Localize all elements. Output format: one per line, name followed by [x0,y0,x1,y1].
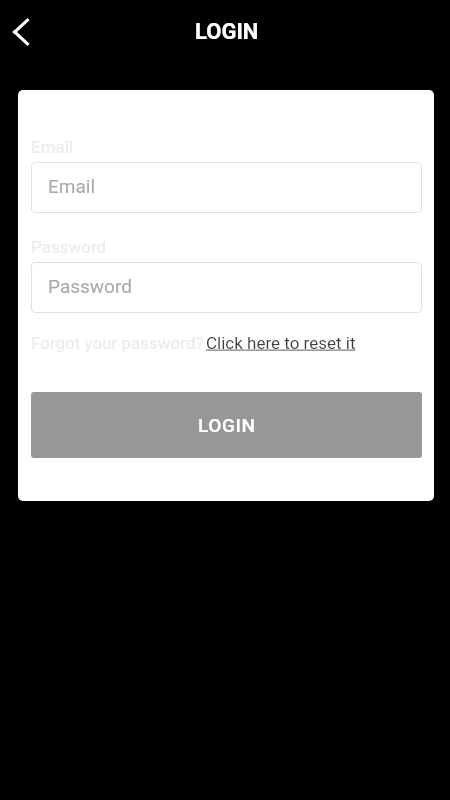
staticText: Password [48,275,132,297]
button[interactable]: Back [0,11,42,53]
button[interactable]: LOGIN [31,392,422,458]
staticText: LOGIN [198,414,256,436]
button[interactable]: Click here to reset it [206,333,356,353]
staticText: Password [31,237,107,257]
button[interactable]: Password [31,262,422,313]
staticText: LOGIN [195,19,259,45]
staticText: Email [31,137,74,157]
staticText: Email [48,175,96,197]
staticText: Click here to reset it [206,333,356,353]
button[interactable]: Email [31,162,422,213]
staticText: Forgot your password? [31,333,204,353]
